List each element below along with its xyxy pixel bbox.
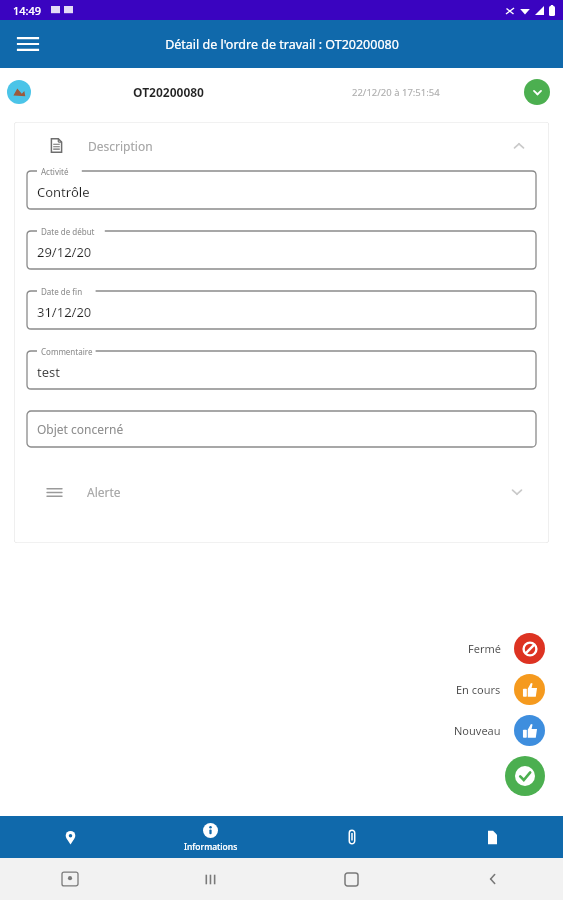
button[interactable]: Open navigation menu (8, 24, 48, 64)
button[interactable]: Activité (27, 171, 536, 209)
button[interactable]: Date de début (27, 231, 536, 269)
button[interactable]: Alerte (14, 471, 549, 513)
staticText: Détail de l'ordre de travail : OT2020008… (165, 36, 399, 53)
button[interactable]: Pièces jointes (281, 816, 422, 858)
staticText: Objet concerné (37, 421, 124, 437)
button[interactable]: Objet concerné (27, 411, 536, 447)
staticText: OT20200080 (133, 84, 204, 100)
button[interactable]: Informations (140, 816, 281, 858)
staticText: Date de début (41, 226, 95, 237)
button[interactable]: Commentaire (27, 351, 536, 389)
staticText: Date de fin (41, 286, 83, 297)
button[interactable]: User avatar (7, 80, 31, 104)
button[interactable]: Description (14, 122, 549, 169)
staticText: test (37, 363, 60, 381)
button[interactable]: Nouveau (454, 715, 545, 746)
button[interactable]: Expand status (524, 79, 550, 105)
staticText: Nouveau (454, 723, 501, 738)
staticText: Commentaire (41, 346, 93, 357)
staticText: Informations (184, 841, 238, 853)
button[interactable]: Documents (422, 816, 563, 858)
staticText: 14:49 (13, 3, 42, 18)
staticText: Contrôle (37, 183, 90, 201)
staticText: Alerte (87, 484, 121, 500)
button[interactable]: Fermé (468, 633, 545, 664)
staticText: Description (88, 138, 153, 154)
button[interactable]: Validate (505, 756, 545, 796)
staticText: 22/12/20 à 17:51:54 (352, 86, 440, 99)
staticText: Activité (41, 166, 69, 177)
button[interactable]: En cours (456, 674, 545, 705)
button[interactable]: Date de fin (27, 291, 536, 329)
staticText: Fermé (468, 641, 501, 656)
staticText: 31/12/20 (37, 303, 92, 321)
staticText: 29/12/20 (37, 243, 92, 261)
staticText: En cours (456, 682, 501, 697)
button[interactable]: Localisation (0, 816, 140, 858)
